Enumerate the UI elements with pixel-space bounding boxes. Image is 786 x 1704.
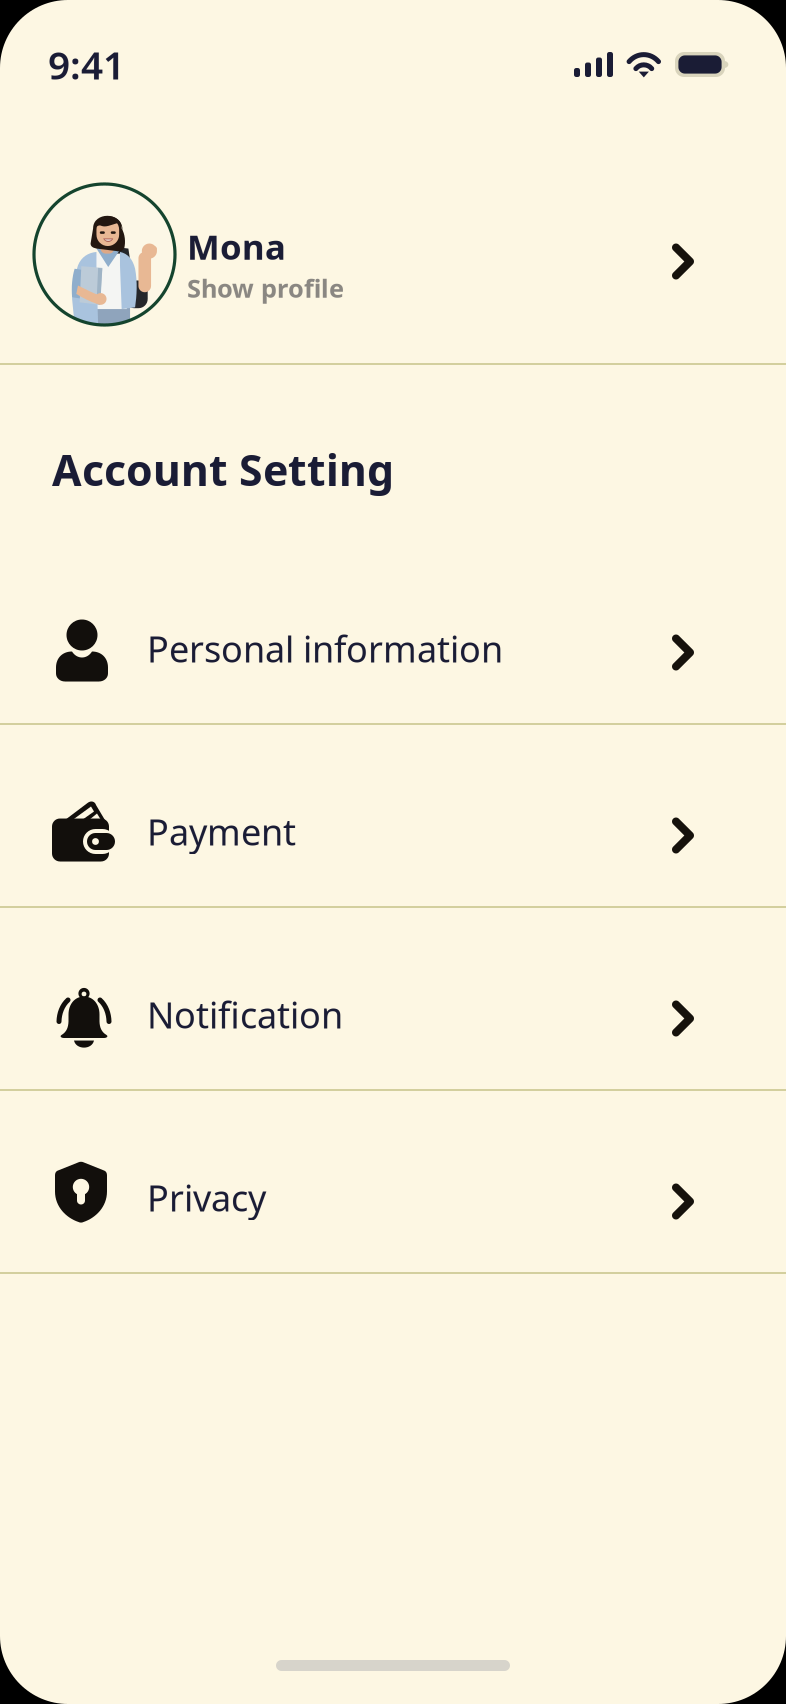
staticText: Mona — [187, 223, 286, 269]
staticText: 9:41 — [48, 39, 125, 90]
staticText: Payment — [147, 808, 296, 855]
staticText: Personal information — [147, 625, 503, 672]
staticText: Privacy — [147, 1174, 266, 1221]
button[interactable]: Notification — [0, 908, 786, 1089]
staticText: Show profile — [187, 271, 344, 305]
button[interactable]: Privacy — [0, 1091, 786, 1272]
button[interactable]: Personal information — [0, 542, 786, 723]
button[interactable]: Mona — [0, 184, 786, 325]
staticText: Account Setting — [52, 441, 394, 498]
staticText: Notification — [147, 991, 343, 1038]
button[interactable]: Payment — [0, 725, 786, 906]
